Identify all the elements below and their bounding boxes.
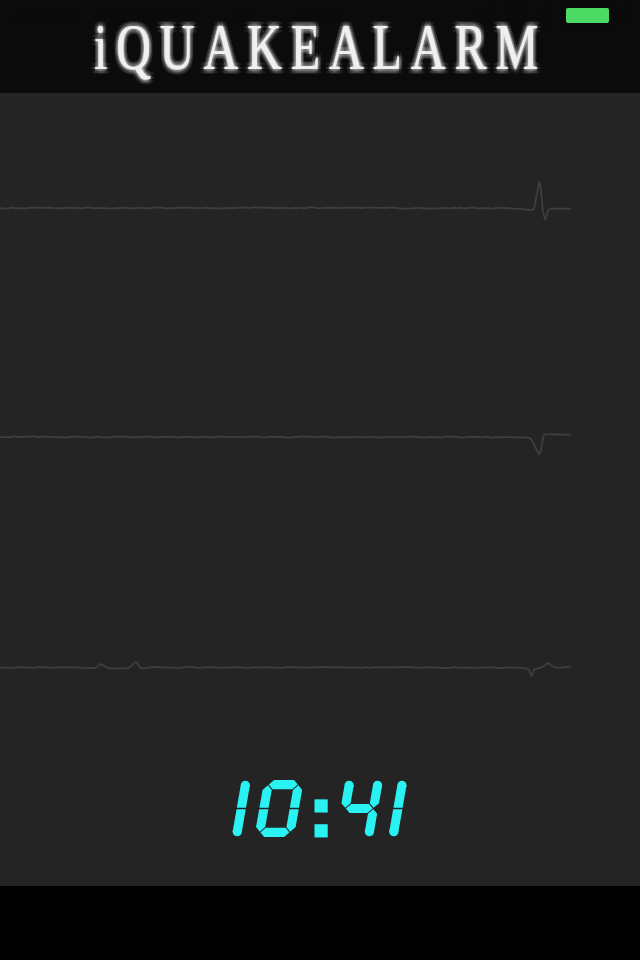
staticText: iQUAKEALARM xyxy=(95,11,549,83)
staticText: iQUAKEALARM xyxy=(91,15,544,87)
staticText: iQUAKEALARM xyxy=(97,11,551,83)
staticText: iQUAKEALARM xyxy=(96,11,549,83)
staticText: iQUAKEALARM xyxy=(92,9,546,81)
staticText: iQUAKEALARM xyxy=(93,11,547,83)
staticText: iQUAKEALARM xyxy=(94,6,547,78)
staticText: iQUAKEALARM xyxy=(93,12,547,84)
staticText: iQUAKEALARM xyxy=(94,10,547,82)
staticText: iQUAKEALARM xyxy=(95,9,549,81)
staticText: iQUAKEALARM xyxy=(94,14,547,86)
staticText: 10:41 xyxy=(295,3,347,30)
staticText: iQUAKEALARM xyxy=(90,11,544,83)
staticText: iQUAKEALARM xyxy=(97,15,550,87)
staticText: iQUAKEALARM xyxy=(92,13,546,85)
staticText: iQUAKEALARM xyxy=(95,13,549,85)
staticText: iQUAKEALARM xyxy=(94,8,547,80)
staticText: iQUAKEALARM xyxy=(94,13,547,85)
staticText: iQUAKEALARM xyxy=(91,7,544,79)
staticText: iQUAKEALARM xyxy=(94,11,547,83)
staticText: iQUAKEALARM xyxy=(94,12,548,84)
staticText: iQUAKEALARM xyxy=(94,10,548,82)
staticText: iQUAKEALARM xyxy=(97,7,550,79)
staticText: iQUAKEALARM xyxy=(93,10,547,82)
staticText: vodafone IT xyxy=(92,4,198,30)
staticText: iQUAKEALARM xyxy=(94,16,547,88)
staticText: iQUAKEALARM xyxy=(91,11,545,83)
